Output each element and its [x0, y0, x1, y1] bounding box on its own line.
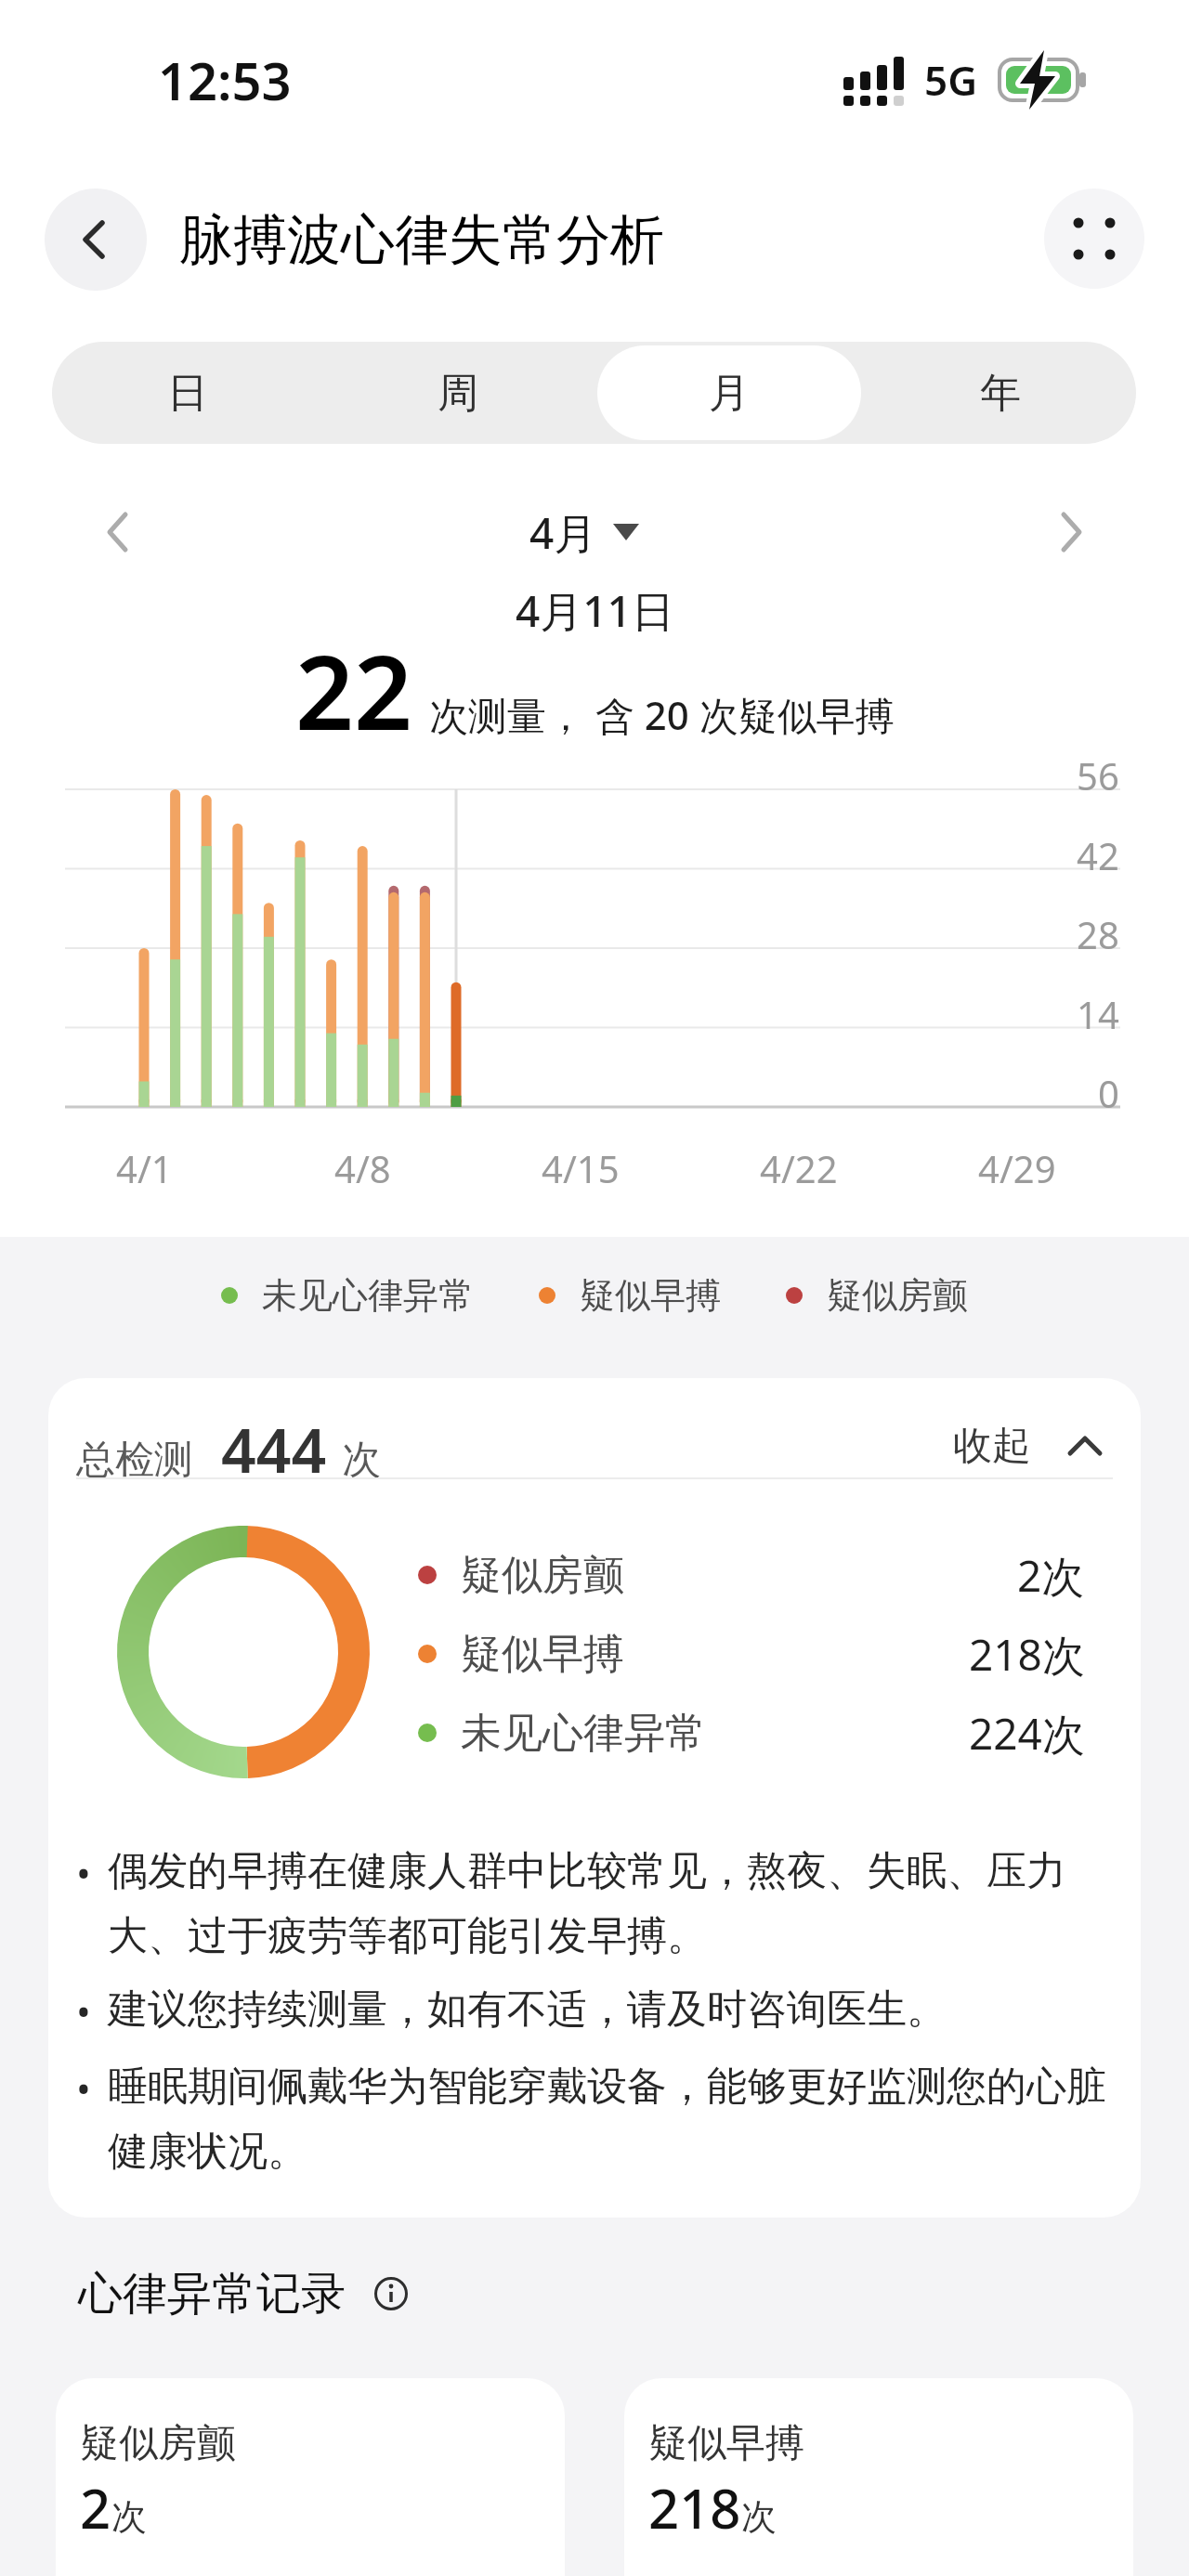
staticText: 偶发的早搏在健康人群中比较常见，熬夜、失眠、压力大、过于疲劳等都可能引发早搏。	[108, 1846, 1109, 1960]
staticText: 总检测	[76, 1436, 193, 1485]
staticText: 2	[80, 2471, 111, 2540]
staticText: 224次	[969, 1704, 1085, 1763]
staticText: 4月11日	[516, 581, 674, 640]
staticText: 56	[1077, 750, 1119, 800]
staticText: 脉搏波心律失常分析	[179, 206, 664, 274]
staticText: 疑似早搏	[461, 1629, 624, 1680]
staticText: 12:53	[158, 45, 292, 115]
staticText: 疑似早搏	[580, 1273, 721, 1318]
staticText: 4/8	[334, 1143, 391, 1193]
staticText: 疑似早搏	[648, 2419, 804, 2468]
staticText: 4/1	[116, 1143, 173, 1193]
button[interactable]	[1054, 512, 1088, 553]
staticText: 0	[1098, 1068, 1119, 1118]
button[interactable]	[502, 506, 687, 558]
button[interactable]	[373, 2276, 409, 2311]
button[interactable]: 疑似房颤	[56, 2378, 565, 2576]
staticText: 28	[1077, 909, 1119, 959]
button[interactable]	[45, 189, 147, 291]
button[interactable]	[101, 512, 135, 553]
staticText: 月	[709, 368, 750, 419]
button[interactable]: 疑似早搏	[624, 2378, 1133, 2576]
staticText: 睡眠期间佩戴华为智能穿戴设备，能够更好监测您的心脏健康状况。	[108, 2062, 1109, 2176]
staticText: 年	[980, 368, 1021, 419]
staticText: 心律异常记录	[78, 2266, 346, 2322]
staticText: 次	[111, 2494, 147, 2539]
staticText: 次测量， 含 20 次疑似早搏	[429, 688, 895, 741]
staticText: •	[76, 1846, 108, 1899]
staticText: 218	[648, 2471, 741, 2540]
button[interactable]: 年	[869, 345, 1132, 440]
staticText: 5G	[924, 52, 978, 108]
staticText: 4月	[529, 503, 597, 562]
staticText: 2次	[1017, 1546, 1085, 1605]
staticText: 疑似房颤	[827, 1273, 968, 1318]
staticText: 42	[1077, 830, 1119, 880]
staticText: 未见心律异常	[461, 1708, 706, 1759]
staticText: •	[76, 2062, 108, 2114]
staticText: 疑似房颤	[461, 1550, 624, 1601]
staticText: 未见心律异常	[262, 1273, 474, 1318]
staticText: •	[76, 1984, 108, 2037]
staticText: 4/29	[978, 1143, 1056, 1193]
staticText: 4/15	[542, 1143, 620, 1193]
staticText: 收起	[953, 1422, 1031, 1471]
staticText: 218次	[969, 1625, 1085, 1684]
staticText: 建议您持续测量，如有不适，请及时咨询医生。	[108, 1984, 1109, 2035]
staticText: 周	[438, 368, 478, 419]
staticText: 22	[295, 620, 412, 741]
staticText: 4/22	[760, 1143, 838, 1193]
staticText: 14	[1077, 989, 1119, 1039]
staticText: 444	[221, 1408, 327, 1473]
button[interactable]: 月	[597, 345, 861, 440]
staticText: 日	[167, 368, 208, 419]
staticText: 次	[342, 1436, 381, 1485]
staticText: 疑似房颤	[80, 2419, 236, 2468]
button[interactable]: 收起	[953, 1413, 1102, 1478]
button[interactable]	[1044, 189, 1144, 289]
staticText: 次	[741, 2494, 777, 2539]
button[interactable]: 日	[56, 345, 319, 440]
button[interactable]: 周	[326, 345, 590, 440]
